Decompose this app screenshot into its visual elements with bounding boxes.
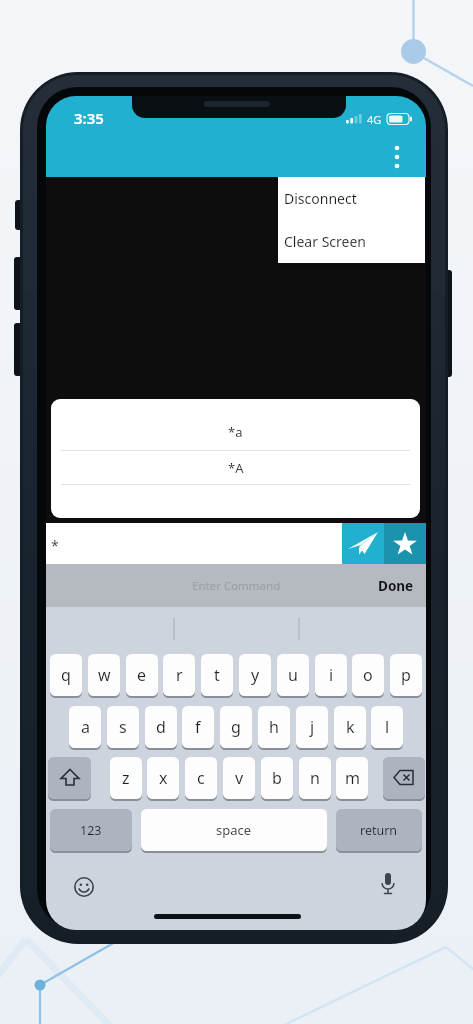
staticText: Enter Command [192, 578, 281, 594]
button[interactable]: c [185, 757, 217, 799]
staticText: h [269, 716, 279, 738]
staticText: c [197, 767, 205, 789]
staticText: return [360, 822, 398, 839]
button[interactable]: d [145, 706, 177, 748]
button[interactable]: j [296, 706, 328, 748]
button[interactable]: r [163, 654, 195, 696]
staticText: l [385, 716, 390, 738]
staticText: 3:35 [74, 108, 104, 128]
staticText: d [156, 716, 166, 738]
staticText: * [51, 536, 59, 555]
button[interactable] [383, 137, 411, 167]
staticText: a [81, 716, 90, 738]
staticText: *A [228, 459, 244, 477]
staticText: b [272, 767, 282, 789]
button[interactable]: u [277, 654, 309, 696]
button[interactable]: e [126, 654, 158, 696]
staticText: f [195, 716, 201, 738]
button[interactable]: f [182, 706, 214, 748]
staticText: w [98, 664, 111, 686]
staticText: 4G [367, 112, 382, 127]
staticText: q [61, 664, 71, 686]
staticText: *a [228, 423, 243, 441]
staticText: z [122, 767, 130, 789]
staticText: t [214, 664, 220, 686]
staticText: k [346, 716, 355, 738]
staticText: space [216, 821, 252, 839]
button[interactable] [48, 757, 91, 799]
button[interactable]: Disconnect [278, 177, 425, 220]
button[interactable]: t [201, 654, 233, 696]
staticText: r [176, 664, 183, 686]
button[interactable]: i [315, 654, 347, 696]
button[interactable]: n [299, 757, 331, 799]
button[interactable] [384, 523, 426, 564]
staticText: u [288, 664, 298, 686]
staticText: y [251, 664, 260, 686]
button[interactable]: x [147, 757, 179, 799]
button[interactable]: return [336, 809, 422, 851]
button[interactable]: Done [366, 564, 426, 607]
staticText: x [159, 767, 168, 789]
staticText: g [231, 716, 241, 738]
button[interactable]: space [141, 809, 327, 851]
button[interactable]: o [352, 654, 384, 696]
button[interactable]: k [334, 706, 366, 748]
button[interactable]: w [88, 654, 120, 696]
staticText: Clear Screen [284, 232, 366, 251]
staticText: 123 [80, 822, 102, 839]
button[interactable] [342, 523, 384, 564]
button[interactable]: a [69, 706, 101, 748]
button[interactable]: y [239, 654, 271, 696]
staticText: m [345, 767, 360, 789]
button[interactable] [383, 757, 425, 799]
button[interactable]: l [371, 706, 403, 748]
button[interactable]: Clear Screen [278, 220, 425, 263]
button[interactable]: q [50, 654, 82, 696]
button[interactable]: z [110, 757, 142, 799]
staticText: o [363, 664, 373, 686]
button[interactable]: v [223, 757, 255, 799]
staticText: Done [378, 577, 414, 595]
staticText: Disconnect [284, 189, 357, 208]
button[interactable]: p [390, 654, 422, 696]
staticText: s [119, 716, 127, 738]
staticText: v [235, 767, 244, 789]
staticText: n [310, 767, 320, 789]
button[interactable]: 123 [50, 809, 132, 851]
staticText: i [329, 664, 334, 686]
button[interactable]: s [107, 706, 139, 748]
button[interactable]: g [220, 706, 252, 748]
button[interactable]: m [336, 757, 368, 799]
button[interactable]: h [258, 706, 290, 748]
button[interactable]: b [261, 757, 293, 799]
staticText: p [401, 664, 411, 686]
staticText: e [137, 664, 147, 686]
staticText: j [310, 716, 315, 738]
